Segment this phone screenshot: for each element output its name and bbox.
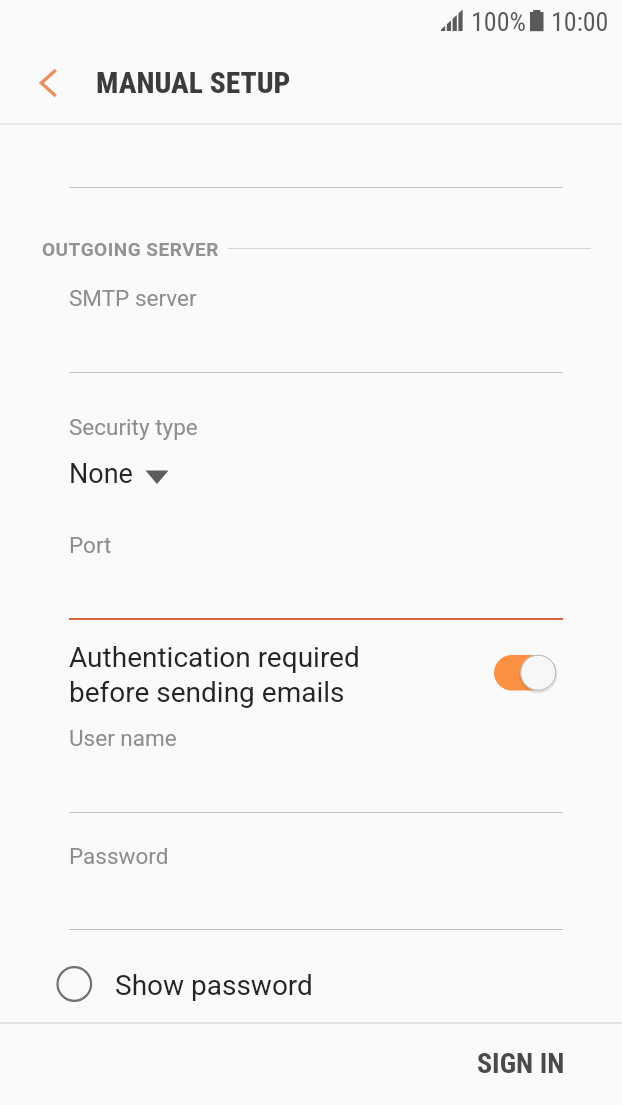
button[interactable]: SMTP server (69, 275, 563, 373)
staticText: User name (69, 725, 177, 751)
button[interactable]: Port (69, 522, 563, 617)
staticText: SIGN IN (477, 1047, 565, 1080)
staticText: Authentication required before sending e… (69, 641, 360, 709)
staticText: OUTGOING SERVER (42, 238, 219, 260)
staticText: Password (69, 843, 169, 869)
staticText: None (69, 458, 133, 490)
button[interactable]: Navigate up (22, 57, 74, 109)
staticText: 10:00 (551, 7, 609, 37)
button[interactable]: User name (69, 715, 563, 812)
staticText: 100% (471, 7, 526, 37)
button[interactable]: Authentication required before sending e… (486, 645, 564, 701)
staticText: Security type (69, 414, 198, 440)
button[interactable]: None (69, 454, 563, 494)
button[interactable]: Show password (40, 950, 380, 1016)
button[interactable]: SIGN IN (311, 1023, 622, 1105)
staticText: MANUAL SETUP (96, 66, 291, 101)
staticText: Show password (115, 969, 313, 1002)
button[interactable]: Password (69, 833, 563, 929)
staticText: SMTP server (69, 285, 197, 311)
staticText: Port (69, 532, 112, 558)
